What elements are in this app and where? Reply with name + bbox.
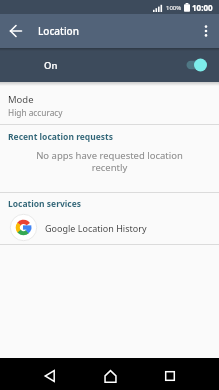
button[interactable] bbox=[140, 360, 200, 390]
staticText: Location services bbox=[8, 198, 82, 210]
button[interactable] bbox=[195, 20, 217, 42]
button[interactable] bbox=[5, 20, 27, 42]
button[interactable]: Mode bbox=[0, 82, 219, 124]
staticText: High accuracy bbox=[8, 107, 63, 118]
staticText: Location bbox=[38, 24, 79, 38]
button[interactable]: Google Location History bbox=[0, 212, 219, 243]
staticText: Mode bbox=[8, 93, 34, 106]
staticText: On bbox=[44, 59, 58, 72]
button[interactable]: On bbox=[0, 48, 219, 82]
staticText: 10:00 bbox=[192, 2, 213, 13]
button[interactable] bbox=[20, 360, 80, 390]
staticText: No apps have requested location recently bbox=[0, 149, 219, 173]
staticText: Recent location requests bbox=[8, 131, 114, 143]
button[interactable] bbox=[80, 360, 140, 390]
staticText: 100% bbox=[166, 4, 182, 12]
staticText: Google Location History bbox=[45, 222, 147, 234]
